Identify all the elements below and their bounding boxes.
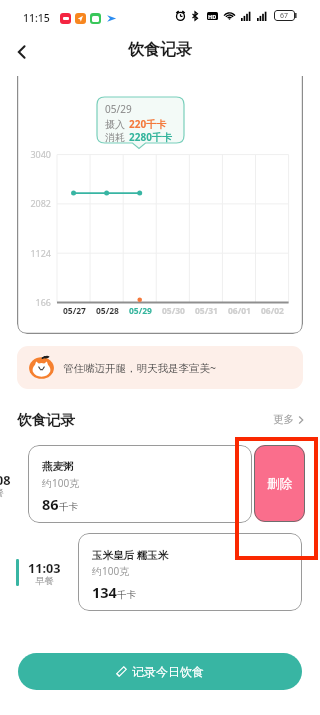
staticText: 约100克	[42, 476, 80, 490]
button[interactable]: 管住嘴迈开腿，明天我是李宣美~	[17, 346, 303, 389]
staticText: 11:03	[28, 559, 61, 576]
staticText: 86	[42, 494, 59, 514]
staticText: 11:08	[0, 471, 11, 488]
staticText: 3040	[30, 148, 51, 160]
staticText: 饮食记录	[17, 411, 75, 429]
staticText: 166	[35, 296, 51, 308]
staticText: 05/31	[195, 305, 218, 317]
staticText: 燕麦粥	[42, 460, 74, 473]
staticText: 饮食记录	[128, 40, 192, 60]
staticText: 67	[280, 11, 289, 21]
staticText: 05/30	[162, 305, 185, 317]
staticText: HD	[208, 13, 217, 20]
staticText: 220千卡	[129, 117, 167, 131]
staticText: 摄入	[105, 118, 125, 131]
staticText: 1124	[30, 247, 51, 259]
staticText: 更多	[273, 413, 294, 426]
staticText: 134	[92, 582, 117, 602]
staticText: 消耗	[105, 131, 125, 144]
staticText: 2280千卡	[129, 130, 172, 144]
staticText: 早餐	[35, 575, 54, 587]
staticText: 05/28	[96, 305, 119, 317]
staticText: 06/02	[261, 305, 284, 317]
staticText: 2082	[30, 197, 51, 209]
button[interactable]: Back	[6, 36, 38, 68]
staticText: 千卡	[117, 589, 136, 601]
button[interactable]: 玉米皇后 糯玉米	[78, 533, 302, 611]
button[interactable]: 记录今日饮食	[18, 653, 302, 690]
staticText: 05/29	[105, 102, 132, 116]
staticText: 玉米皇后 糯玉米	[92, 548, 169, 562]
staticText: 约100克	[92, 564, 130, 578]
button[interactable]: 燕麦粥	[28, 445, 252, 523]
staticText: 11:15	[23, 11, 50, 25]
staticText: 千卡	[59, 501, 78, 513]
staticText: 06/01	[228, 305, 251, 317]
staticText: 管住嘴迈开腿，明天我是李宣美~	[63, 361, 217, 375]
staticText: 05/27	[63, 305, 86, 317]
button[interactable]: 删除	[254, 445, 305, 522]
staticText: 05/29	[129, 305, 152, 317]
staticText: 早餐	[0, 487, 4, 499]
staticText: 记录今日饮食	[132, 664, 204, 679]
button[interactable]: 更多	[273, 413, 305, 426]
staticText: 删除	[267, 476, 292, 492]
